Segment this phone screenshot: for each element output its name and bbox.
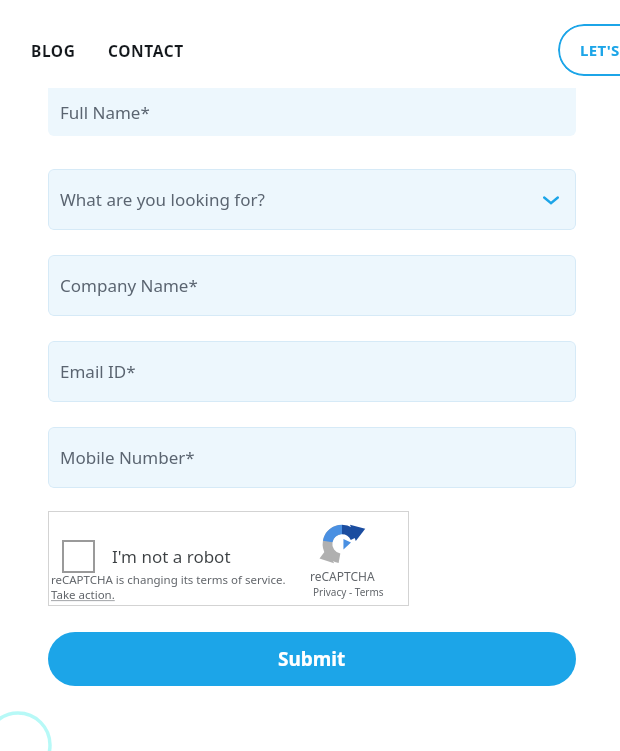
staticText: reCAPTCHA xyxy=(310,568,375,584)
staticText: LET'S TALK xyxy=(580,40,620,60)
staticText: What are you looking for? xyxy=(60,188,265,211)
button[interactable]: CONTACT xyxy=(107,34,185,67)
staticText: BLOG xyxy=(31,40,76,61)
button[interactable]: Mobile Number* xyxy=(48,427,576,488)
button[interactable]: LET'S TALK xyxy=(558,24,620,76)
button[interactable]: What are you looking for? xyxy=(48,169,576,230)
button[interactable]: I'm not a robot checkbox xyxy=(48,511,409,606)
staticText: Mobile Number* xyxy=(60,446,195,469)
staticText: I'm not a robot xyxy=(112,545,231,568)
button[interactable]: Email ID* xyxy=(48,341,576,402)
button[interactable]: Full Name* xyxy=(48,88,576,136)
button[interactable]: Company Name* xyxy=(48,255,576,316)
staticText: Full Name* xyxy=(60,101,150,124)
staticText: Company Name* xyxy=(60,274,198,297)
button[interactable]: BLOG xyxy=(30,34,77,67)
button[interactable]: I'm not a robot checkbox xyxy=(62,540,95,573)
staticText: reCAPTCHA is changing its terms of servi… xyxy=(51,572,286,588)
other: reCAPTCHA logo xyxy=(320,522,364,566)
other: Open dropdown xyxy=(542,191,560,209)
button[interactable]: Submit xyxy=(48,632,576,686)
staticText: CONTACT xyxy=(108,40,184,61)
staticText: Email ID* xyxy=(60,360,136,383)
button[interactable]: Privacy - Terms xyxy=(313,585,384,599)
staticText: Submit xyxy=(278,646,346,672)
button[interactable]: Take action. xyxy=(51,587,115,603)
